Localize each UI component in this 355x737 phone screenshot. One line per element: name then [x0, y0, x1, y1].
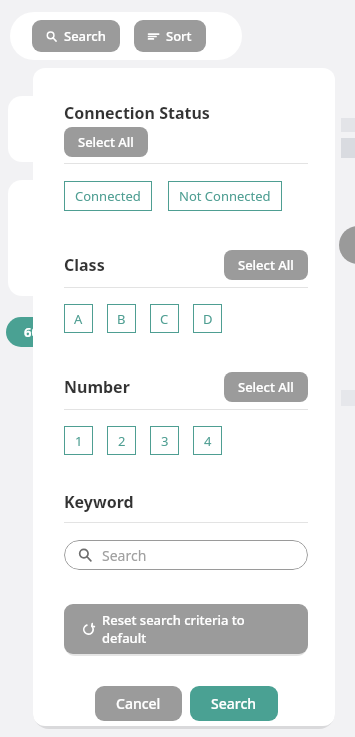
button[interactable]: C — [150, 304, 179, 333]
staticText: Search — [211, 694, 257, 713]
staticText: Select All — [78, 133, 134, 151]
staticText: Search — [64, 27, 106, 45]
button[interactable]: B — [107, 304, 136, 333]
button[interactable]: Search — [190, 686, 278, 721]
button[interactable]: 3 — [150, 426, 179, 455]
staticText: Not Connected — [179, 187, 271, 205]
staticText: C — [160, 310, 169, 328]
button[interactable]: 4 — [193, 426, 222, 455]
staticText: Search — [102, 546, 147, 565]
staticText: D — [203, 310, 213, 328]
button[interactable]: Not Connected — [168, 181, 282, 211]
button[interactable]: Sort — [134, 20, 206, 52]
staticText: Cancel — [116, 694, 161, 713]
button[interactable]: Connected — [64, 181, 152, 211]
staticText: 4 — [204, 432, 212, 450]
staticText: Select All — [238, 256, 294, 274]
button[interactable]: Add — [339, 226, 355, 264]
staticText: Connected — [75, 187, 141, 205]
staticText: 60 — [24, 323, 39, 341]
staticText: Connection Status — [64, 102, 210, 124]
staticText: Select All — [238, 378, 294, 396]
staticText: Class — [64, 254, 105, 276]
button[interactable]: A — [64, 304, 93, 333]
staticText: 1 — [75, 432, 83, 450]
button[interactable]: Select All — [224, 372, 308, 402]
staticText: B — [117, 310, 126, 328]
button[interactable]: 1 — [64, 426, 93, 455]
staticText: 2 — [118, 432, 126, 450]
staticText: Sort — [166, 27, 192, 45]
staticText: Number — [64, 376, 130, 398]
button[interactable]: D — [193, 304, 222, 333]
button[interactable]: Search — [64, 540, 308, 570]
button[interactable]: Cancel — [95, 686, 182, 721]
button[interactable]: Reset search criteria to default — [64, 604, 308, 654]
staticText: Reset search criteria to default — [102, 611, 290, 647]
staticText: Keyword — [64, 491, 134, 513]
staticText: A — [74, 310, 83, 328]
button[interactable]: 2 — [107, 426, 136, 455]
button[interactable]: Select All — [224, 250, 308, 280]
staticText: 3 — [161, 432, 169, 450]
button[interactable]: Select All — [64, 127, 148, 157]
button[interactable]: Search — [32, 20, 120, 52]
